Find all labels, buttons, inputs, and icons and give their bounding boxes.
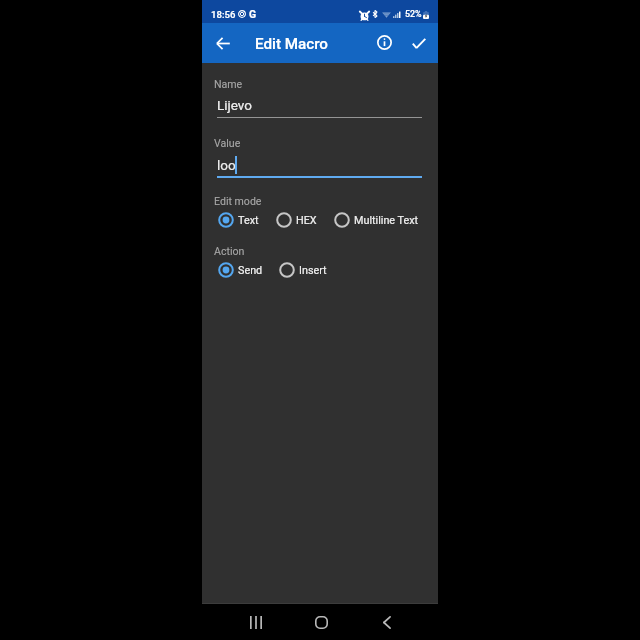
staticText: Multiline Text: [354, 214, 419, 227]
staticText: Value: [214, 137, 241, 149]
button[interactable]: Back: [204, 24, 242, 62]
button[interactable]: Value: [214, 134, 424, 178]
button[interactable]: Insert: [278, 260, 327, 280]
button[interactable]: Home: [301, 604, 341, 640]
staticText: HEX: [296, 214, 317, 227]
staticText: Edit mode: [214, 195, 262, 207]
staticText: Name: [214, 78, 243, 90]
button[interactable]: Back: [367, 604, 407, 640]
staticText: 52%: [405, 9, 422, 19]
button[interactable]: Save: [401, 25, 437, 61]
staticText: loo: [217, 157, 236, 173]
button[interactable]: Send: [217, 260, 263, 280]
button[interactable]: Info: [366, 24, 402, 60]
staticText: Lijevo: [217, 97, 252, 113]
staticText: Text: [238, 214, 259, 227]
staticText: Insert: [299, 264, 327, 277]
button[interactable]: HEX: [275, 210, 317, 230]
button[interactable]: Text: [217, 210, 259, 230]
staticText: 18:56: [211, 9, 236, 20]
staticText: G: [249, 8, 257, 20]
staticText: Edit Macro: [255, 35, 328, 53]
button[interactable]: Recent apps: [236, 604, 276, 640]
staticText: Action: [214, 245, 245, 257]
staticText: Send: [238, 264, 263, 277]
button[interactable]: Name: [214, 75, 424, 119]
button[interactable]: Multiline Text: [333, 210, 419, 230]
